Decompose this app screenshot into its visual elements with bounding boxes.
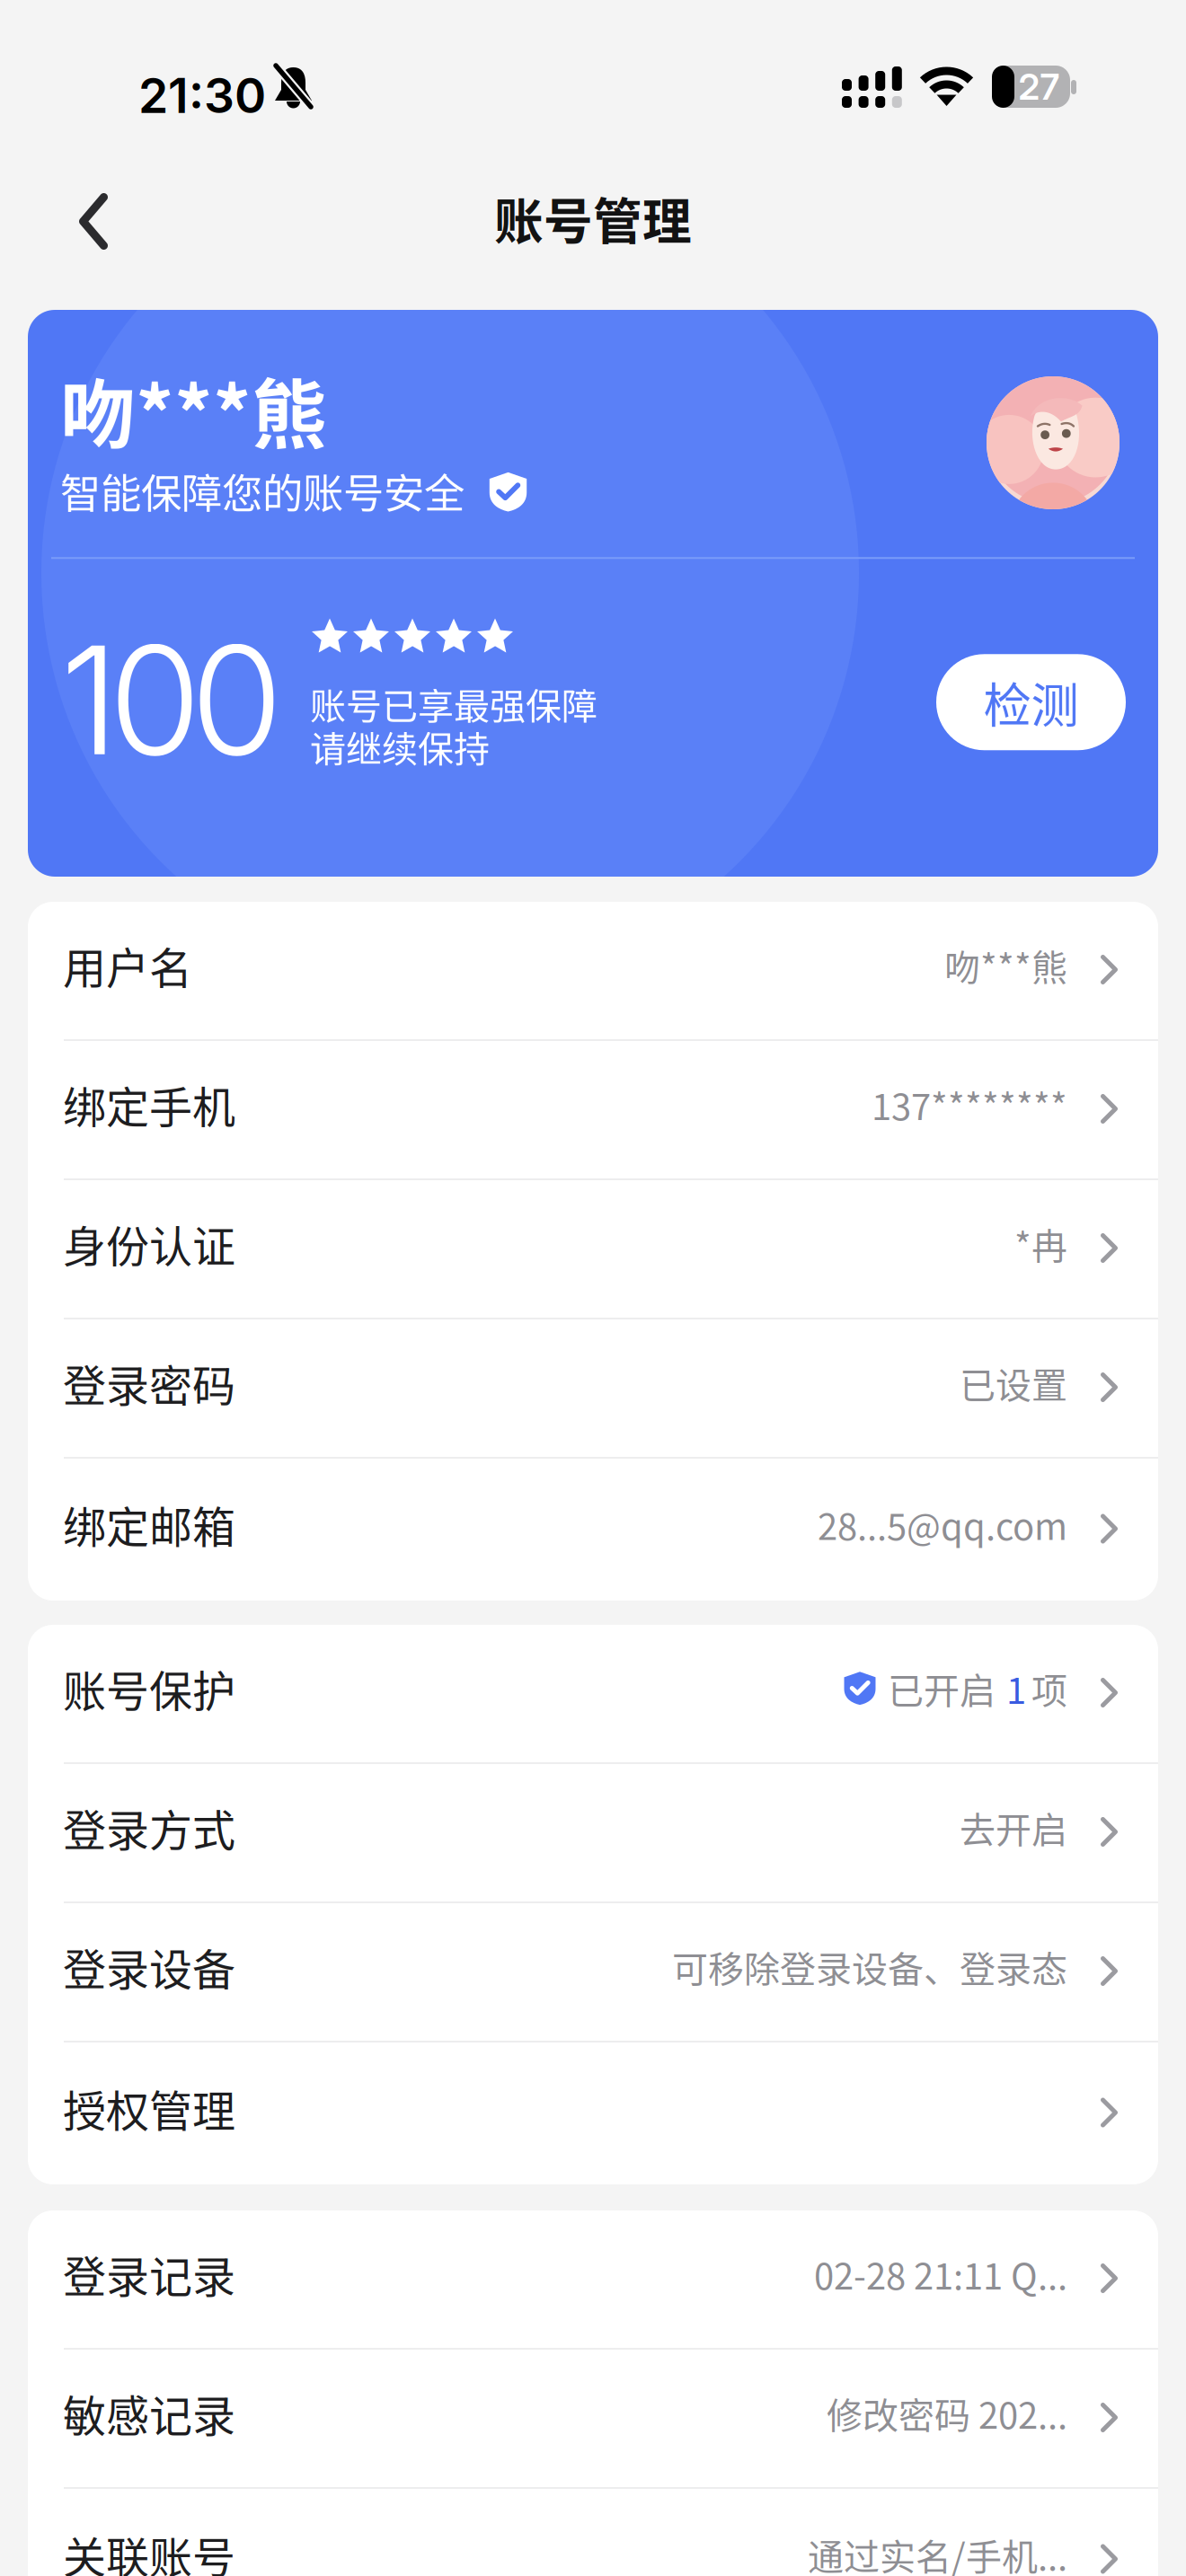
button[interactable]: 绑定邮箱 (28, 1459, 1158, 1601)
staticText: 绑定手机 (63, 1073, 235, 1135)
staticText: 关联账号 (63, 2523, 235, 2576)
button[interactable]: 关联账号 (28, 2489, 1158, 2576)
button[interactable]: 登录方式 (28, 1764, 1158, 1901)
button[interactable]: 用户名 (28, 902, 1158, 1039)
staticText: 吻***熊 (60, 355, 327, 464)
staticText: 授权管理 (63, 2077, 235, 2139)
staticText: 可移除登录设备、登录态 (672, 1941, 1067, 1993)
staticText: 检测 (983, 668, 1079, 737)
staticText: 账号已享最强保障 (310, 678, 597, 730)
button[interactable]: 登录记录 (28, 2210, 1158, 2348)
staticText: 敏感记录 (63, 2382, 235, 2444)
staticText: 通过实名/手机... (808, 2528, 1067, 2576)
button[interactable]: 绑定手机 (28, 1041, 1158, 1178)
button[interactable]: 登录设备 (28, 1903, 1158, 2041)
button[interactable]: 身份认证 (28, 1180, 1158, 1318)
staticText: 请继续保持 (310, 721, 490, 773)
staticText: 智能保障您的账号安全 (60, 461, 465, 520)
staticText: 登录记录 (63, 2243, 235, 2305)
staticText: 绑定邮箱 (63, 1493, 235, 1555)
staticText: 吻***熊 (944, 939, 1067, 991)
staticText: 去开启 (960, 1801, 1067, 1853)
staticText: 100 (60, 609, 283, 790)
button[interactable]: 授权管理 (28, 2042, 1158, 2184)
staticText: 用户名 (63, 934, 192, 996)
staticText: 身份认证 (63, 1212, 235, 1275)
staticText: 已开启 (888, 1662, 996, 1714)
staticText: 28...5@qq.com (818, 1498, 1067, 1550)
staticText: 137******** (872, 1078, 1067, 1130)
staticText: 登录方式 (63, 1796, 235, 1859)
staticText: 已设置 (960, 1357, 1067, 1409)
staticText: 项 (1031, 1662, 1067, 1714)
staticText: 账号保护 (63, 1657, 235, 1719)
staticText: 27 (1018, 65, 1060, 108)
button[interactable]: 账号保护 (28, 1625, 1158, 1762)
button[interactable]: Back (0, 157, 153, 286)
staticText: 登录设备 (63, 1935, 235, 1998)
button[interactable]: 检测 (936, 654, 1126, 750)
button[interactable]: 敏感记录 (28, 2350, 1158, 2487)
staticText: *冉 (1014, 1217, 1067, 1269)
staticText: 修改密码 202... (827, 2387, 1067, 2439)
staticText: 02-28 21:11 Q... (814, 2248, 1067, 2300)
staticText: 账号管理 (494, 182, 692, 253)
staticText: 21:30 (138, 66, 266, 124)
button[interactable]: 登录密码 (28, 1319, 1158, 1457)
staticText: 登录密码 (63, 1352, 235, 1414)
staticText: 1 (1006, 1662, 1026, 1714)
